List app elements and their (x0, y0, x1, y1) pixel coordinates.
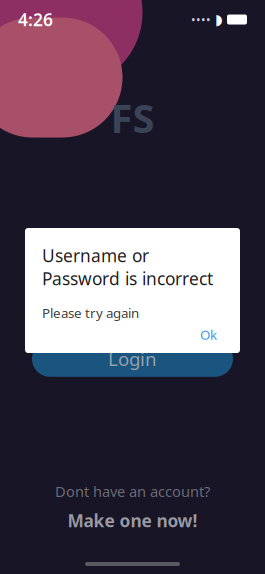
staticText: ◗ (215, 11, 223, 28)
staticText: Dont have an account? (55, 481, 210, 501)
staticText: Password (68, 295, 142, 316)
staticText: Ok (200, 326, 217, 343)
staticText: FS (110, 91, 154, 144)
staticText: Make one now! (67, 509, 197, 532)
staticText: Please try again (42, 304, 139, 322)
staticText: Username (68, 251, 147, 272)
button[interactable]: Dont have an account? (0, 477, 265, 536)
staticText: Login (108, 346, 157, 371)
button[interactable]: Login (0, 341, 265, 377)
staticText: 4:26 (18, 8, 53, 31)
staticText: •••• (191, 11, 211, 27)
button[interactable]: Ok (194, 322, 223, 347)
staticText: Username or Password is incorrect (42, 244, 213, 290)
